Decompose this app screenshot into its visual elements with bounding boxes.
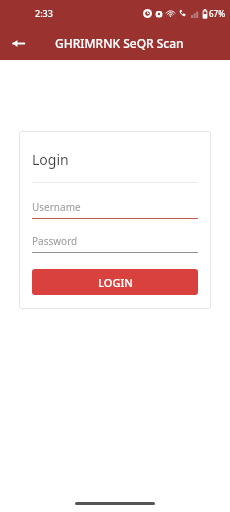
staticText: 67%: [209, 8, 225, 19]
staticText: LOGIN: [98, 275, 133, 290]
staticText: Username: [32, 200, 81, 214]
staticText: Password: [32, 234, 78, 248]
staticText: 2:33: [35, 7, 53, 19]
button[interactable]: LOGIN: [32, 269, 198, 295]
button[interactable]: Back: [5, 30, 32, 57]
button[interactable]: Username: [32, 199, 198, 219]
button[interactable]: Password: [32, 233, 198, 253]
staticText: Login: [32, 150, 69, 169]
staticText: GHRIMRNK SeQR Scan: [55, 35, 184, 51]
